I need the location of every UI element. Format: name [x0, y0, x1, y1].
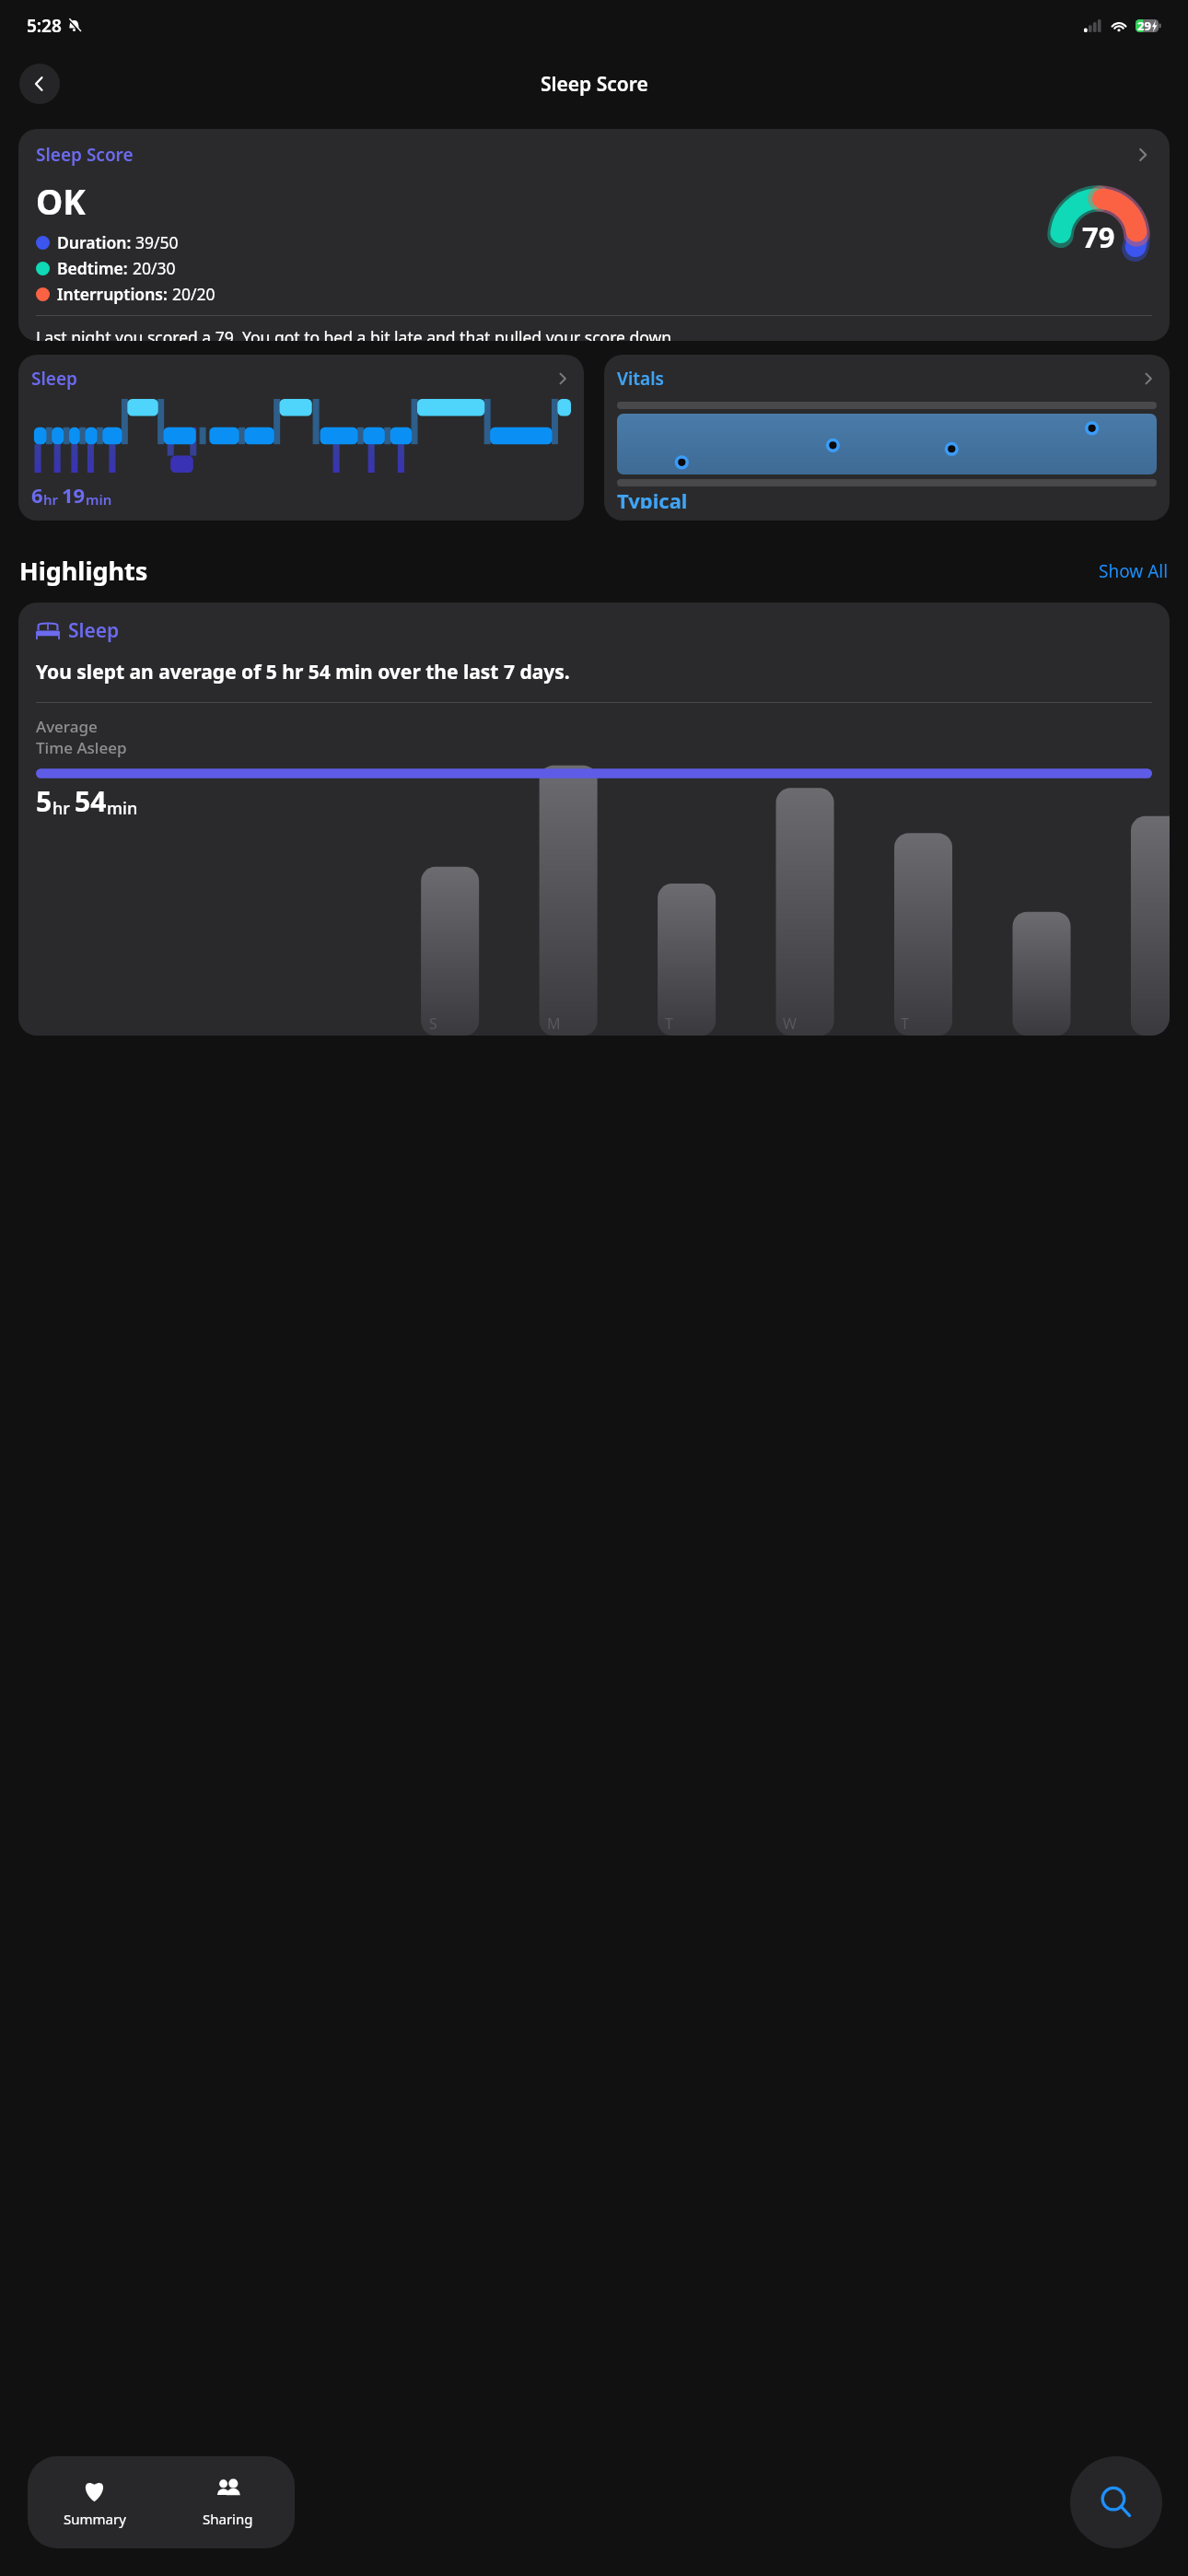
staticText: hr [52, 797, 75, 820]
staticText: hr [43, 490, 62, 509]
staticText: Average [36, 716, 98, 737]
staticText: Sharing [203, 2510, 253, 2528]
staticText: min [86, 490, 112, 509]
staticText: T [665, 1013, 673, 1034]
staticText: 39/50 [135, 231, 179, 253]
staticText: Last night you scored a 79. You got to b… [36, 326, 676, 341]
staticText: 5:28 [27, 14, 62, 38]
staticText: 20/30 [133, 257, 176, 279]
staticText: Duration: [57, 231, 135, 253]
staticText: Show All [1099, 559, 1169, 583]
staticText: W [783, 1013, 797, 1034]
staticText: 19 [62, 481, 86, 509]
button[interactable]: Vitals [604, 355, 1170, 521]
staticText: Highlights [19, 554, 148, 588]
staticText: 20/20 [172, 283, 215, 305]
staticText: 79 [1082, 217, 1115, 256]
staticText: Time Asleep [36, 737, 127, 758]
button[interactable]: Sleep [18, 355, 584, 521]
staticText: min [107, 797, 138, 820]
staticText: You slept an average of 5 hr 54 min over… [36, 659, 570, 685]
staticText: Sleep [68, 617, 120, 644]
button[interactable]: Back [19, 64, 60, 104]
staticText: Sleep [31, 367, 77, 391]
button[interactable]: Sleep Score [18, 129, 1170, 341]
staticText: T [901, 1013, 909, 1034]
staticText: Vitals [617, 367, 664, 391]
staticText: 54 [75, 782, 107, 820]
staticText: M [547, 1013, 561, 1034]
staticText: 6 [31, 481, 43, 509]
staticText: S [429, 1013, 437, 1034]
staticText: Interruptions: [57, 283, 172, 305]
button[interactable]: Summary [28, 2456, 161, 2548]
button[interactable]: Sharing [161, 2456, 295, 2548]
button[interactable]: Sleep [18, 603, 1170, 1036]
staticText: Bedtime: [57, 257, 133, 279]
staticText: Sleep Score [36, 143, 134, 167]
staticText: OK [36, 178, 86, 224]
button[interactable]: Show All [1099, 559, 1169, 583]
staticText: 5 [36, 782, 52, 820]
staticText: Typical [617, 486, 688, 509]
staticText: Sleep Score [541, 71, 648, 98]
staticText: Summary [64, 2510, 126, 2528]
staticText: 29 [1137, 18, 1151, 34]
button[interactable]: Search [1070, 2456, 1162, 2548]
